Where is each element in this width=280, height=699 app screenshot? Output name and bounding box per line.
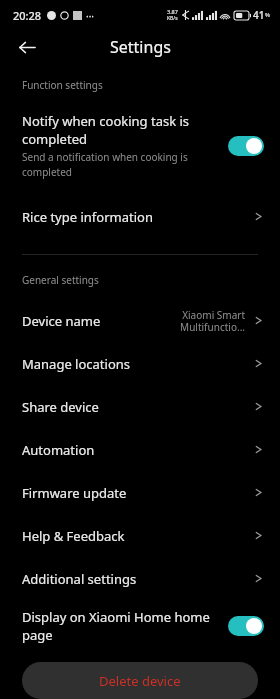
button[interactable]: Help & Feedback (0, 514, 280, 557)
button[interactable]: Additional settings (0, 557, 280, 600)
button[interactable]: Device name (0, 299, 280, 342)
button[interactable]: Automation (0, 428, 280, 471)
button[interactable]: Firmware update (0, 471, 280, 514)
staticText: Additional settings (22, 570, 137, 588)
staticText: % (265, 11, 270, 19)
staticText: 3.87 (167, 8, 178, 15)
staticText: Settings (110, 36, 171, 58)
staticText: Device name (22, 312, 101, 330)
staticText: Automation (22, 441, 95, 459)
staticText: ··· (86, 9, 95, 23)
staticText: Xiaomi Smart Multifunctio... (180, 308, 245, 334)
button[interactable]: Notify when cooking task is completed (0, 104, 280, 187)
button[interactable]: Manage locations (0, 342, 280, 385)
staticText: Display on Xiaomi Home home page (22, 608, 210, 644)
staticText: Send a notification when cooking is comp… (22, 150, 188, 179)
button[interactable]: Rice type information (0, 195, 280, 238)
staticText: General settings (22, 273, 99, 287)
staticText: Delete device (99, 672, 181, 690)
button[interactable]: Delete device (22, 662, 258, 699)
staticText: 20:28 (13, 8, 42, 23)
staticText: Firmware update (22, 484, 127, 502)
staticText: KB/s (167, 15, 178, 22)
staticText: 41 (253, 8, 265, 22)
staticText: Function settings (22, 78, 103, 92)
staticText: Share device (22, 398, 99, 416)
button[interactable]: Share device (0, 385, 280, 428)
staticText: Notify when cooking task is completed (22, 112, 190, 148)
staticText: Rice type information (22, 208, 153, 226)
staticText: Help & Feedback (22, 527, 125, 545)
button[interactable]: Display on Xiaomi Home home page (0, 600, 280, 652)
button[interactable]: Toggle (228, 136, 264, 156)
staticText: Manage locations (22, 355, 131, 373)
button[interactable]: Toggle (228, 616, 264, 636)
button[interactable]: Back (10, 30, 44, 64)
